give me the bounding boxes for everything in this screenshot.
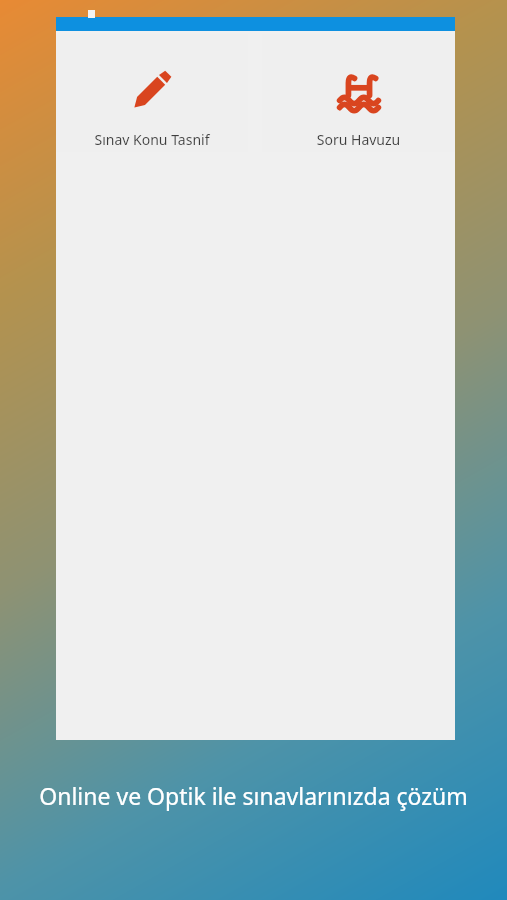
staticText: Sınav Konu Tasnif <box>56 130 248 149</box>
button[interactable]: Soru Havuzu <box>262 34 455 152</box>
staticText: Online ve Optik ile sınavlarınızda çözüm <box>24 780 483 811</box>
other: Soru Havuzu <box>337 68 381 112</box>
staticText: Soru Havuzu <box>262 130 455 149</box>
button[interactable]: Sınav Konu Tasnif <box>56 34 248 152</box>
other: Sınav Konu Tasnif <box>130 68 174 112</box>
